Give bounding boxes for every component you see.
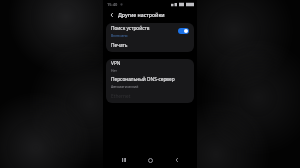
button[interactable]: Back [171,154,183,166]
button[interactable]: Recents [118,154,130,166]
staticText: Другие настройки [118,11,165,18]
staticText: Включено [111,33,128,38]
button[interactable]: Поиск устройств [106,23,194,39]
button[interactable]: Back [107,10,116,19]
staticText: 15:40 [107,2,118,7]
staticText: VPN [111,60,121,67]
button[interactable]: VPN [106,59,194,74]
button[interactable]: Toggle device scanning [178,28,189,34]
staticText: Персональный DNS-сервер [111,76,175,83]
staticText: Печать [111,42,128,49]
button[interactable]: Home [144,154,156,166]
staticText: Поиск устройств [111,25,150,32]
staticText: Нет [111,68,117,73]
button[interactable]: Персональный DNS-сервер [106,74,194,90]
staticText: Автоматический [111,84,139,89]
button[interactable]: Ethernet [106,90,194,103]
button[interactable]: Печать [106,39,194,52]
staticText: Ethernet [111,93,131,100]
